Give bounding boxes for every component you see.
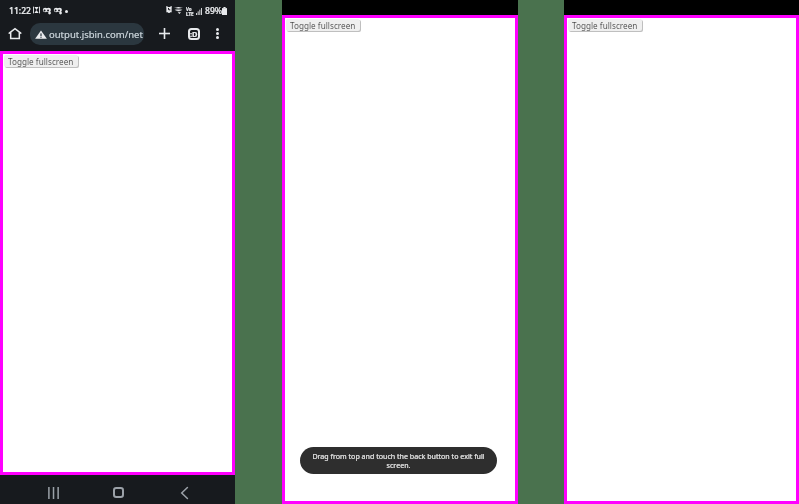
button[interactable]: Recent apps xyxy=(37,478,70,504)
button[interactable]: Home xyxy=(102,478,135,504)
staticText: Toggle fullscreen xyxy=(291,20,357,31)
button[interactable]: output.jsbin.com/net xyxy=(30,23,144,45)
button[interactable]: Toggle fullscreen xyxy=(568,19,642,31)
staticText: Toggle fullscreen xyxy=(572,20,638,31)
staticText: Toggle fullscreen xyxy=(9,56,75,67)
staticText: Toggle fullscreen xyxy=(573,20,639,31)
button[interactable]: Home xyxy=(4,23,25,44)
staticText: Drag from top and touch the back button … xyxy=(309,451,488,471)
button[interactable]: Toggle fullscreen xyxy=(4,55,78,67)
staticText: :D xyxy=(190,29,198,39)
button[interactable]: More options xyxy=(207,23,228,44)
button[interactable]: Back xyxy=(168,478,201,504)
button[interactable]: New tab xyxy=(154,23,175,44)
staticText: 11:22 xyxy=(9,5,32,17)
staticText: Toggle fullscreen xyxy=(8,56,74,67)
staticText: 89% xyxy=(205,5,223,17)
staticText: Vo LTE xyxy=(186,6,194,17)
staticText: output.jsbin.com/net xyxy=(49,28,143,41)
button[interactable]: Toggle fullscreen xyxy=(286,19,360,31)
staticText: Toggle fullscreen xyxy=(290,20,356,31)
button[interactable]: Switch tabs xyxy=(183,23,204,44)
